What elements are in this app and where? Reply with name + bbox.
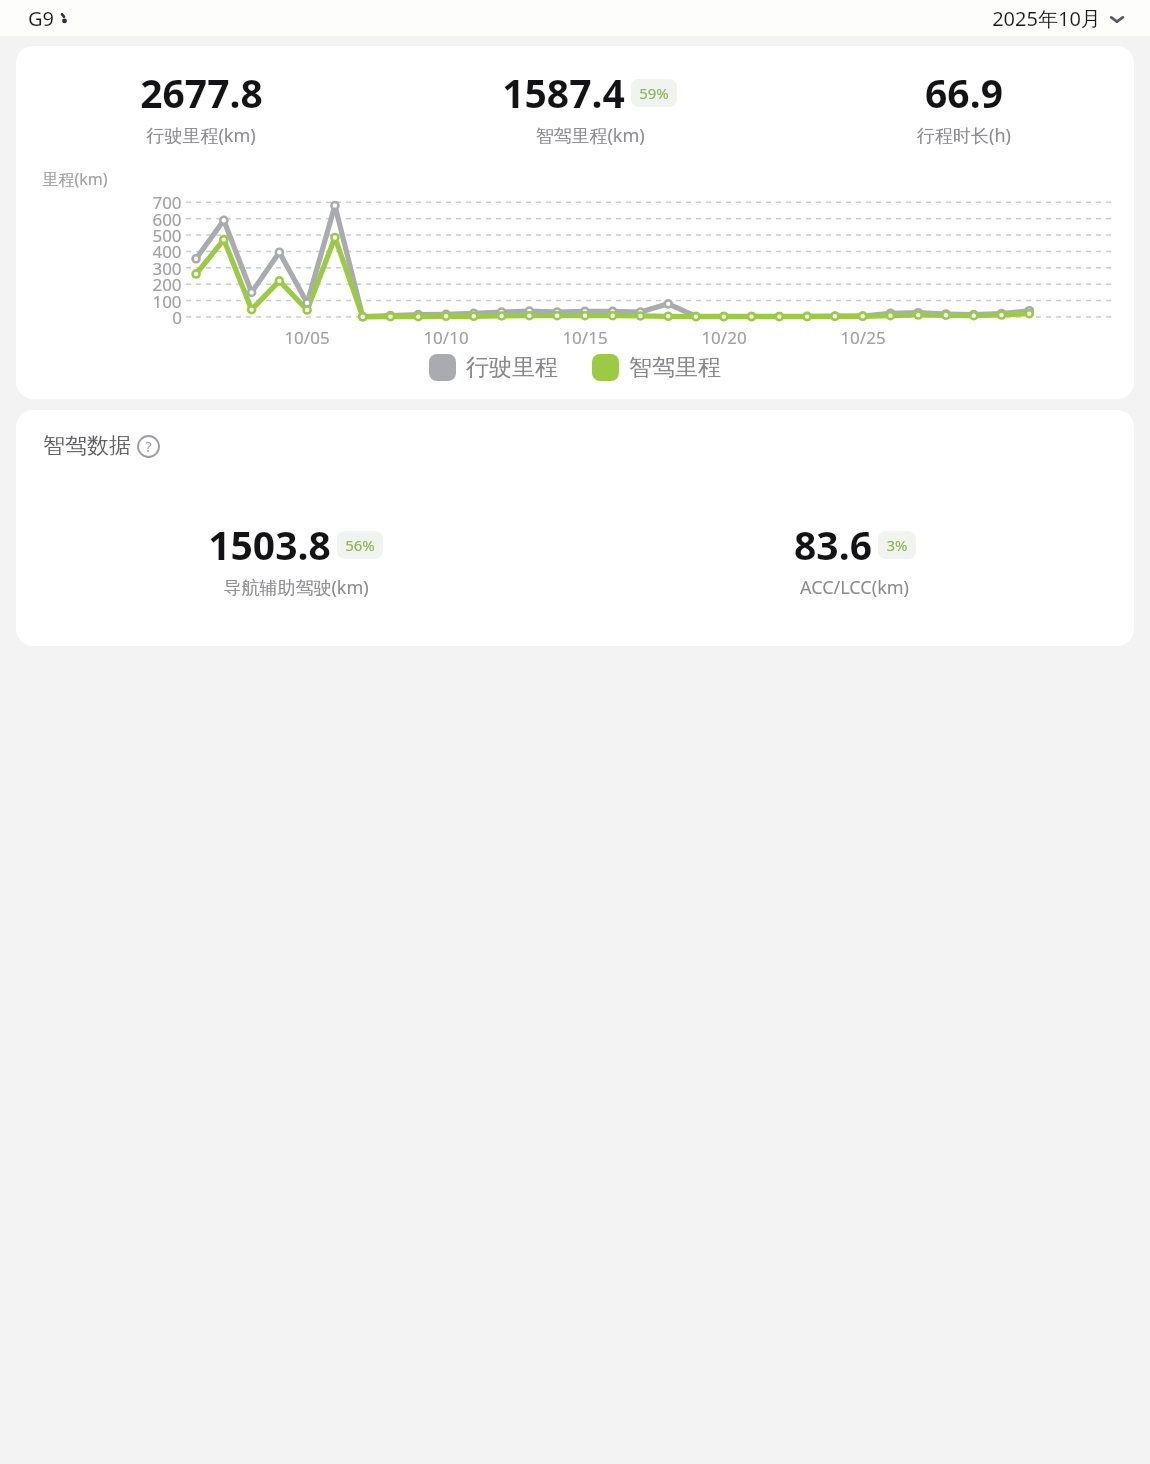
staticText: 行驶里程 <box>466 353 558 382</box>
staticText: 66.9 <box>925 66 1003 119</box>
staticText: 行驶里程(km) <box>146 123 256 148</box>
staticText: 200 <box>152 273 182 296</box>
staticText: 400 <box>152 240 182 263</box>
button[interactable]: 1587.4 <box>386 66 793 148</box>
staticText: 10/05 <box>284 326 330 349</box>
staticText: 2677.8 <box>140 66 263 119</box>
staticText: 10/10 <box>423 326 469 349</box>
staticText: 300 <box>152 257 182 280</box>
button[interactable]: 83.6 <box>575 518 1134 600</box>
staticText: 600 <box>152 208 182 231</box>
other: Vehicle <box>59 11 67 27</box>
button[interactable]: 智驾数据 <box>43 432 160 460</box>
staticText: ? <box>145 437 152 456</box>
button[interactable]: 行驶里程 <box>429 353 558 382</box>
staticText: 0 <box>172 306 182 329</box>
staticText: 1587.4 <box>502 66 625 119</box>
staticText: 83.6 <box>794 518 872 571</box>
staticText: 3% <box>886 535 908 555</box>
staticText: 导航辅助驾驶(km) <box>223 575 369 600</box>
staticText: 1503.8 <box>208 518 331 571</box>
staticText: 智驾数据 <box>43 432 131 460</box>
button[interactable]: 智驾里程 <box>592 353 721 382</box>
button[interactable]: G9 <box>28 5 67 32</box>
staticText: 10/25 <box>840 326 886 349</box>
staticText: G9 <box>28 5 54 32</box>
staticText: 2025年10月 <box>992 5 1101 32</box>
staticText: 行程时长(h) <box>917 123 1011 148</box>
button[interactable]: 66.9 <box>793 66 1134 148</box>
staticText: 里程(km) <box>42 168 108 190</box>
staticText: ACC/LCC(km) <box>800 575 909 600</box>
staticText: 700 <box>152 191 182 214</box>
staticText: 智驾里程 <box>629 353 721 382</box>
staticText: 智驾里程(km) <box>535 123 645 148</box>
button[interactable]: 1503.8 <box>16 518 575 600</box>
staticText: 59% <box>639 83 669 103</box>
staticText: 100 <box>152 290 182 313</box>
button[interactable]: 2677.8 <box>16 66 386 148</box>
button[interactable]: 2025年10月 <box>992 5 1125 32</box>
staticText: 500 <box>152 224 182 247</box>
staticText: 10/20 <box>701 326 747 349</box>
button[interactable]: Help <box>137 435 160 458</box>
staticText: 10/15 <box>562 326 608 349</box>
staticText: 56% <box>345 535 375 555</box>
